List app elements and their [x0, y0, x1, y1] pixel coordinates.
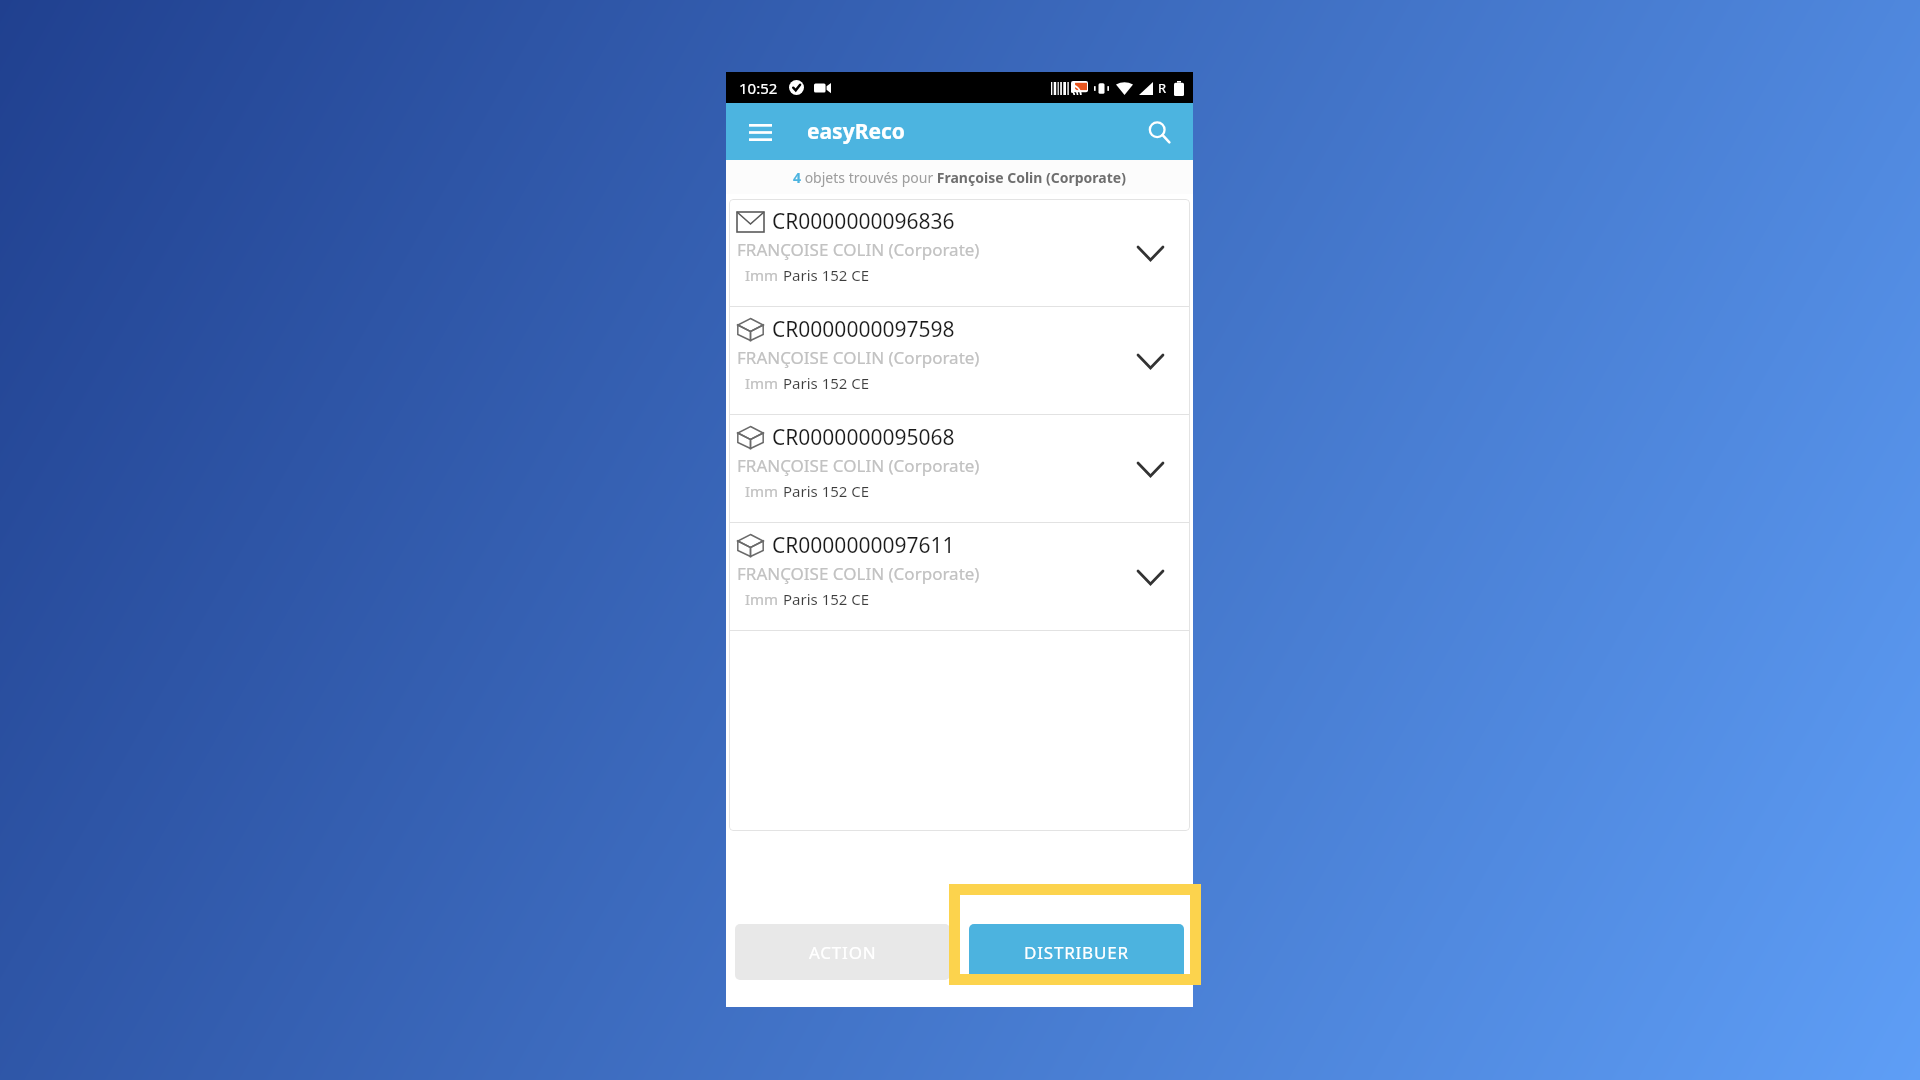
button[interactable]: Expand	[1129, 232, 1171, 274]
button[interactable]: Search	[1137, 110, 1181, 154]
staticText: CR0000000097611	[772, 531, 955, 560]
staticText: FRANÇOISE COLIN (Corporate)	[737, 562, 980, 585]
staticText: Imm	[745, 265, 783, 285]
staticText: CR0000000095068	[772, 423, 955, 452]
staticText: FRANÇOISE COLIN (Corporate)	[737, 346, 980, 369]
staticText: Imm	[745, 589, 783, 609]
staticText: Imm	[745, 481, 783, 501]
button[interactable]: DISTRIBUER	[969, 924, 1184, 980]
staticText: Paris 152 CE	[783, 373, 870, 393]
staticText: Paris 152 CE	[783, 265, 870, 285]
button[interactable]: Expand	[1129, 556, 1171, 598]
button[interactable]: ACTION	[735, 924, 950, 980]
button[interactable]: CR0000000097611	[729, 523, 1190, 630]
staticText: 10:52	[739, 78, 778, 98]
staticText: Imm	[745, 373, 783, 393]
button[interactable]: CR0000000097598	[729, 307, 1190, 414]
button[interactable]: CR0000000095068	[729, 415, 1190, 522]
staticText: Paris 152 CE	[783, 481, 870, 501]
button[interactable]: CR0000000096836	[729, 199, 1190, 306]
staticText: easyReco	[807, 117, 905, 146]
staticText: ACTION	[809, 941, 877, 964]
staticText: CR0000000097598	[772, 315, 955, 344]
staticText: 4 objets trouvés pour Françoise Colin (C…	[793, 168, 1126, 187]
staticText: FRANÇOISE COLIN (Corporate)	[737, 454, 980, 477]
button[interactable]: Menu	[738, 110, 782, 154]
staticText: CR0000000096836	[772, 207, 955, 236]
button[interactable]: Expand	[1129, 448, 1171, 490]
staticText: DISTRIBUER	[1024, 941, 1129, 964]
staticText: R	[1158, 79, 1167, 97]
staticText: FRANÇOISE COLIN (Corporate)	[737, 238, 980, 261]
staticText: Paris 152 CE	[783, 589, 870, 609]
button[interactable]: Expand	[1129, 340, 1171, 382]
